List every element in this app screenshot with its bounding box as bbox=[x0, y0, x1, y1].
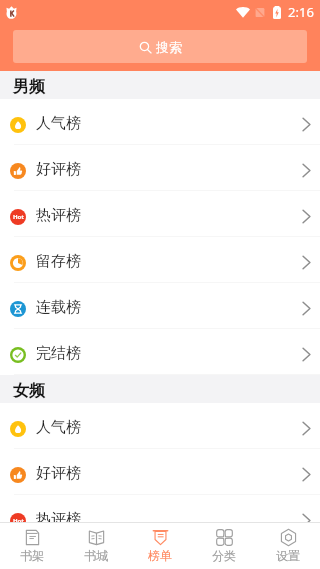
staticText: 热评榜 bbox=[36, 510, 81, 529]
staticText: 好评榜 bbox=[36, 464, 81, 483]
staticText: 男频 bbox=[13, 77, 45, 97]
button[interactable]: Hot bbox=[0, 495, 320, 541]
button[interactable]: 分类 bbox=[192, 523, 256, 569]
button[interactable]: 设置 bbox=[256, 523, 320, 569]
button[interactable]: 书城 bbox=[64, 523, 128, 569]
button[interactable]: 人气榜 bbox=[0, 99, 320, 145]
staticText: 人气榜 bbox=[36, 114, 81, 133]
staticText: 书城 bbox=[84, 548, 108, 563]
button[interactable]: 人气榜 bbox=[0, 403, 320, 449]
button[interactable]: 榜单 bbox=[128, 523, 192, 569]
staticText: 2:16 bbox=[288, 3, 314, 21]
staticText: Hot bbox=[13, 517, 24, 525]
button[interactable]: 留存榜 bbox=[0, 237, 320, 283]
staticText: 女频 bbox=[13, 381, 45, 401]
button[interactable]: Hot bbox=[0, 191, 320, 237]
button[interactable]: 搜索 bbox=[13, 30, 307, 63]
button[interactable]: 好评榜 bbox=[0, 145, 320, 191]
staticText: 书架 bbox=[20, 548, 44, 563]
staticText: 人气榜 bbox=[36, 418, 81, 437]
staticText: 好评榜 bbox=[36, 160, 81, 179]
button[interactable]: 连载榜 bbox=[0, 283, 320, 329]
button[interactable]: 完结榜 bbox=[0, 329, 320, 375]
staticText: Hot bbox=[13, 213, 24, 221]
staticText: 搜索 bbox=[156, 39, 182, 55]
button[interactable]: 好评榜 bbox=[0, 449, 320, 495]
staticText: 完结榜 bbox=[36, 344, 81, 363]
staticText: 榜单 bbox=[148, 548, 172, 563]
staticText: 热评榜 bbox=[36, 206, 81, 225]
staticText: 留存榜 bbox=[36, 252, 81, 271]
staticText: 设置 bbox=[276, 548, 300, 563]
button[interactable]: 书架 bbox=[0, 523, 64, 569]
staticText: 连载榜 bbox=[36, 298, 81, 317]
staticText: 分类 bbox=[212, 548, 236, 563]
